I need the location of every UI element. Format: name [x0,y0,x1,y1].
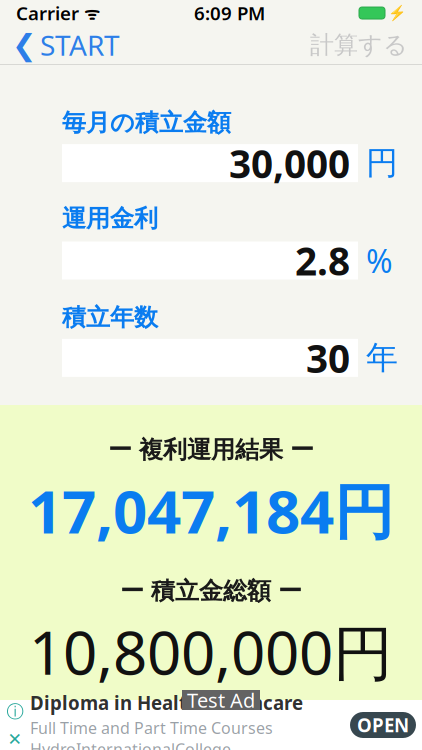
staticText: % [366,239,393,282]
staticText: ❮ [12,28,37,62]
staticText: OPEN [357,713,409,737]
staticText: 6:09 PM [194,1,265,25]
staticText: Carrier [16,1,79,25]
staticText: 毎月の積立金額 [62,108,231,137]
staticText: ⚡ [388,5,406,21]
staticText: ー 積立金総額 ー [120,576,302,606]
button[interactable]: 30,000 [62,144,358,182]
button[interactable]: 2.8 [62,241,358,279]
staticText: 積立年数 [62,303,158,332]
staticText: 2.8 [295,235,350,286]
staticText: Test Ad [187,687,255,713]
button[interactable]: ⓘ [0,700,422,750]
staticText: START [40,26,120,64]
staticText: ⓘ [6,701,23,722]
button[interactable]: 30 [62,339,358,377]
staticText: 年 [366,338,398,377]
staticText: 10,800,000円 [29,612,393,691]
button[interactable]: 計算する [296,27,422,63]
staticText: ✕ [7,729,22,749]
staticText: Diploma in Health & Skincare [30,690,303,715]
button[interactable]: ❮ [0,27,132,63]
staticText: 計算する [310,30,408,60]
staticText: ー 複利運用結果 ー [108,435,314,464]
staticText: 30 [306,332,350,383]
staticText: 円 [366,143,398,183]
staticText: 17,047,184円 [28,470,394,550]
staticText: Full Time and Part Time Courses HydroInt… [30,717,273,750]
staticText: 30,000 [229,137,350,189]
staticText: 運用金利 [62,204,158,233]
staticText: ᯤ [79,1,100,24]
